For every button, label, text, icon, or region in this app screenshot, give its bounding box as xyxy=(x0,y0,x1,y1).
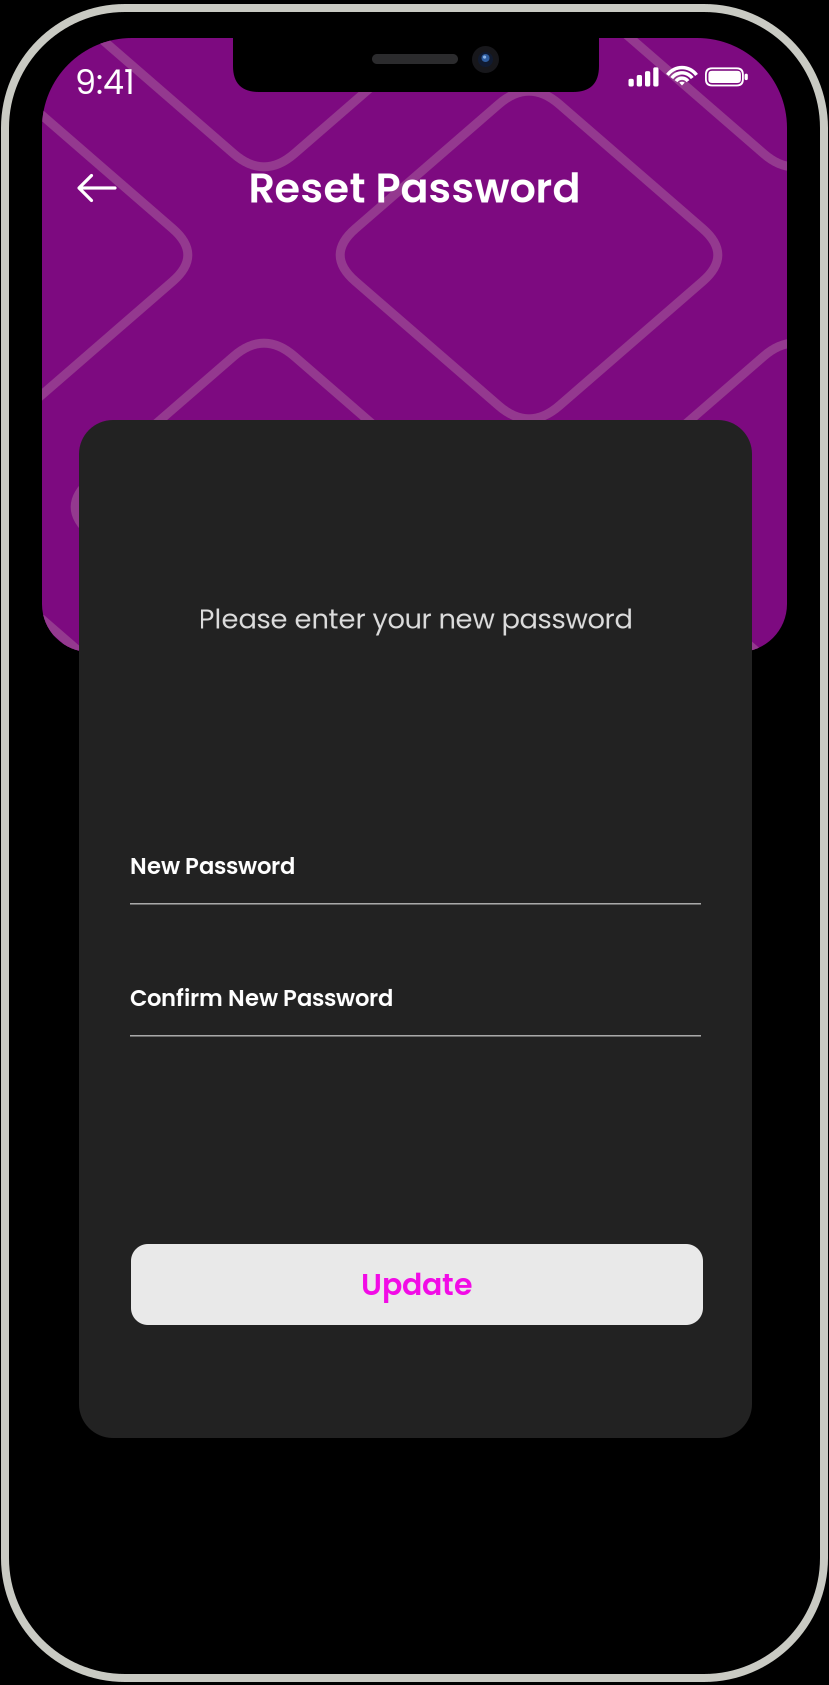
staticText: Update xyxy=(361,1263,473,1305)
button[interactable]: Update xyxy=(131,1244,703,1325)
staticText: Confirm New Password xyxy=(130,982,393,1014)
staticText: New Password xyxy=(130,850,295,882)
staticText: Please enter your new password xyxy=(198,600,632,638)
button[interactable]: Back xyxy=(42,156,152,220)
staticText: Reset Password xyxy=(248,159,580,217)
staticText: 9:41 xyxy=(75,59,135,106)
